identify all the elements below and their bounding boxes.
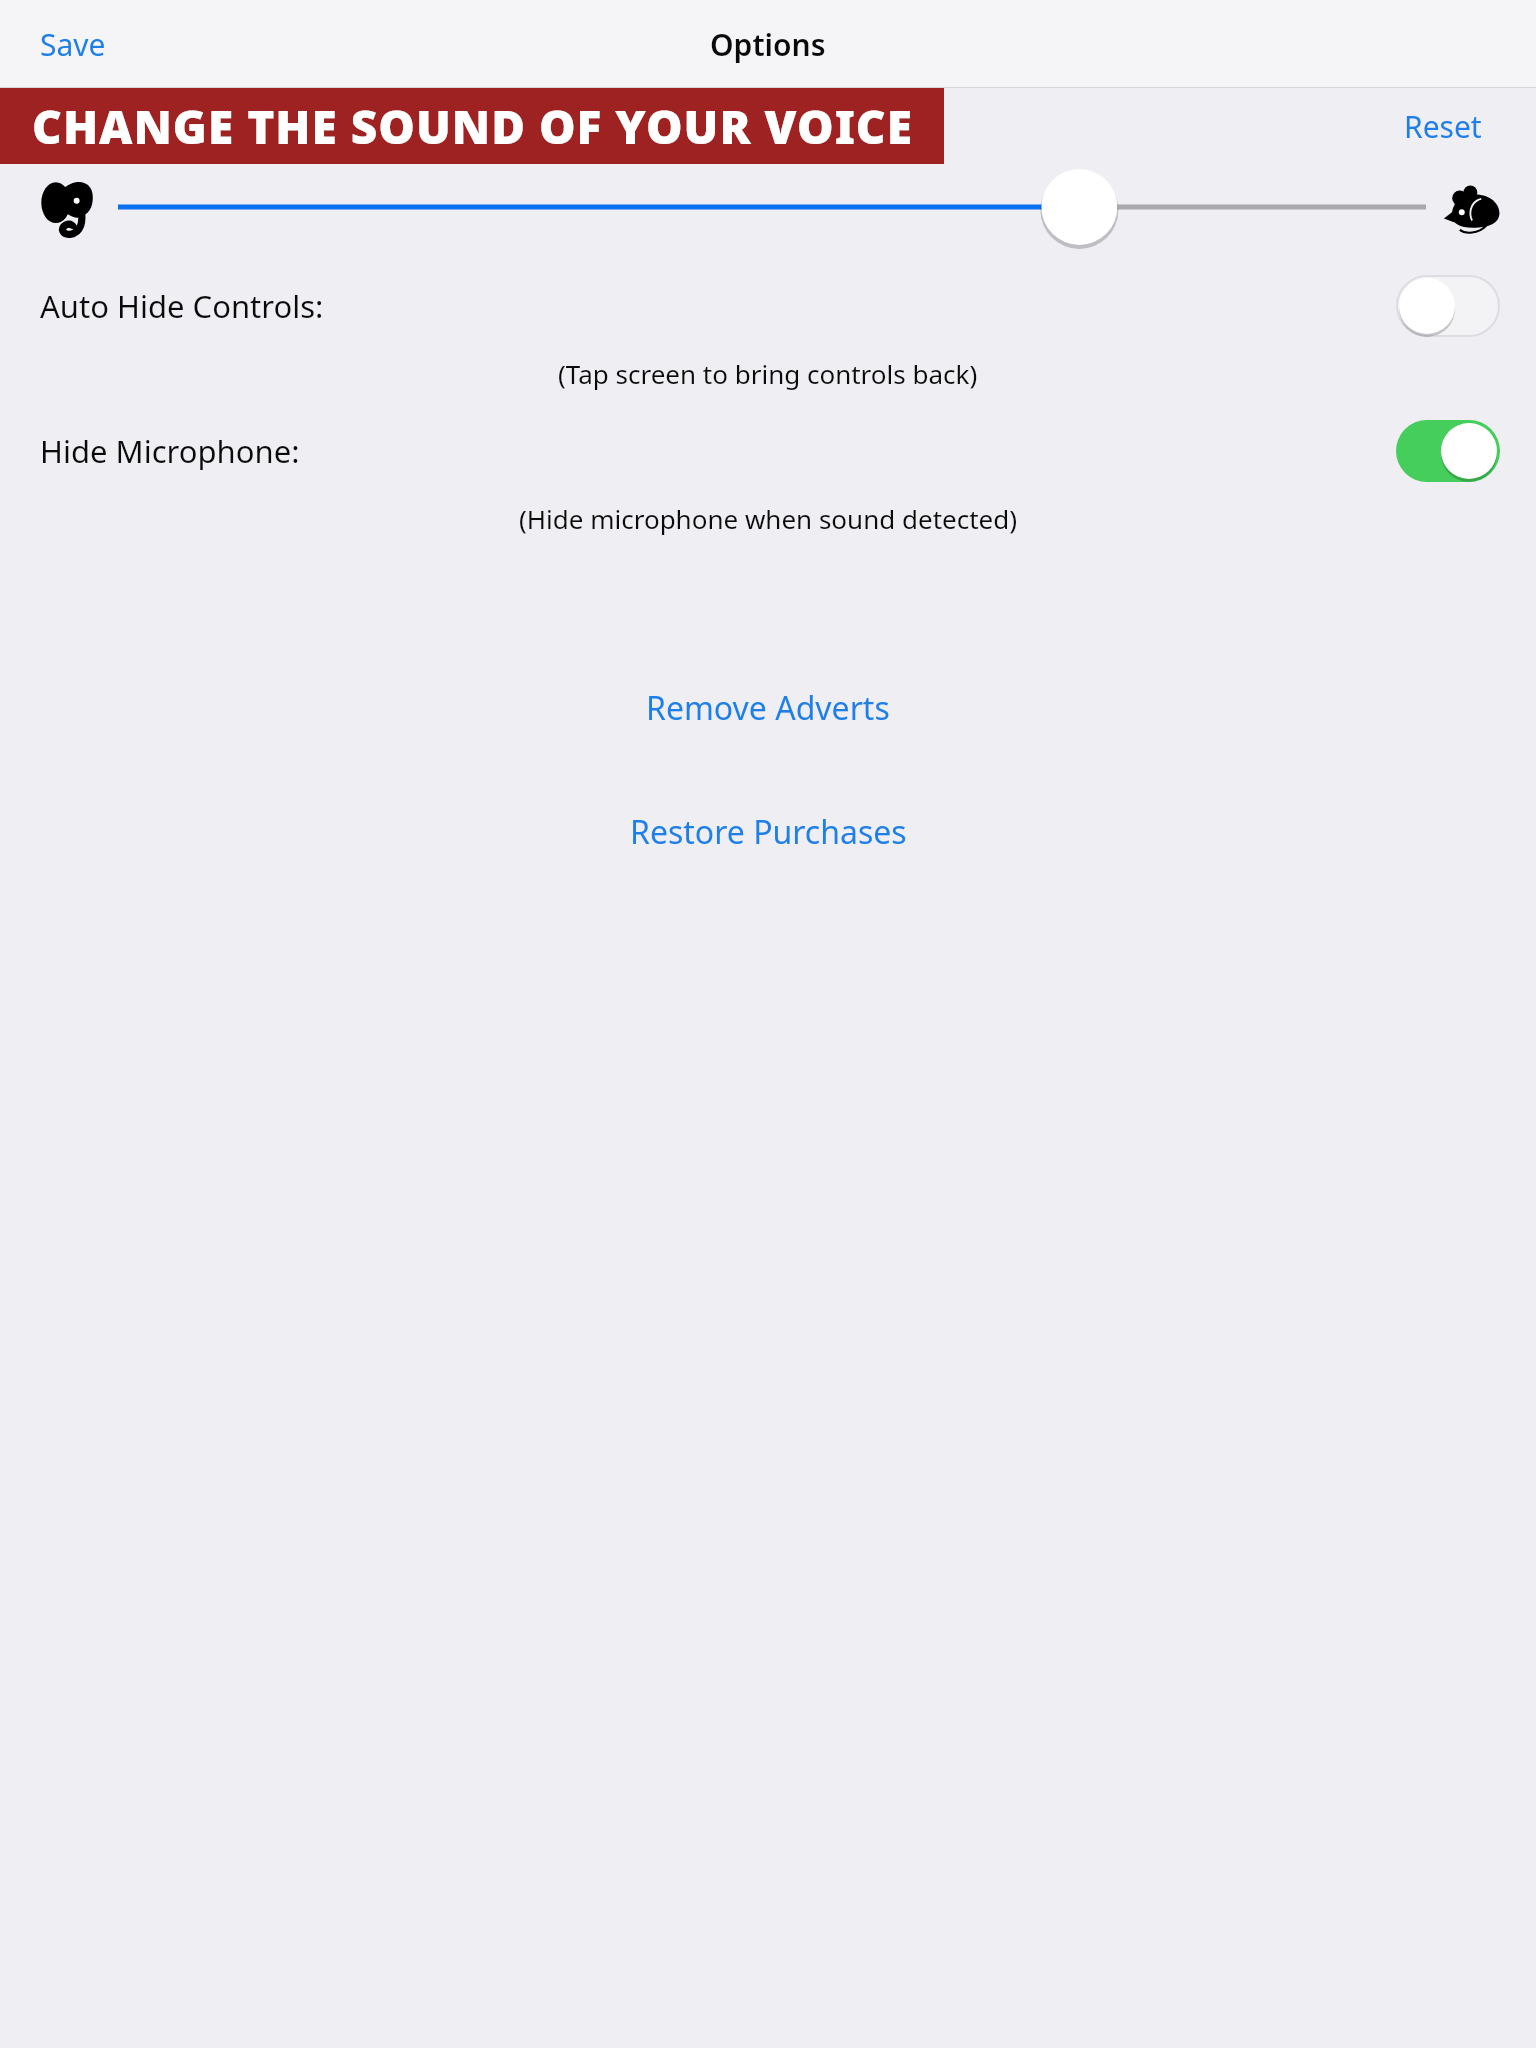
staticText: Save [40, 24, 106, 65]
staticText: Reset [1404, 106, 1482, 147]
staticText: Restore Purchases [630, 810, 907, 854]
staticText: CHANGE THE SOUND OF YOUR VOICE [32, 95, 913, 158]
staticText: Auto Hide Controls: [40, 285, 324, 327]
staticText: (Tap screen to bring controls back) [558, 356, 978, 391]
button[interactable]: Reset [1390, 98, 1496, 155]
button[interactable]: Remove Adverts [622, 676, 914, 740]
staticText: Voice Pitch Shift: [40, 106, 272, 147]
button[interactable]: Save [24, 16, 122, 73]
staticText: Hide Microphone: [40, 430, 300, 472]
staticText: Options [710, 24, 826, 65]
staticText: Remove Adverts [646, 686, 890, 730]
button[interactable]: Hide Microphone: [1396, 420, 1500, 482]
button[interactable]: Restore Purchases [606, 800, 931, 864]
button[interactable]: Auto Hide Controls: [1396, 275, 1500, 337]
staticText: (Hide microphone when sound detected) [519, 501, 1018, 536]
